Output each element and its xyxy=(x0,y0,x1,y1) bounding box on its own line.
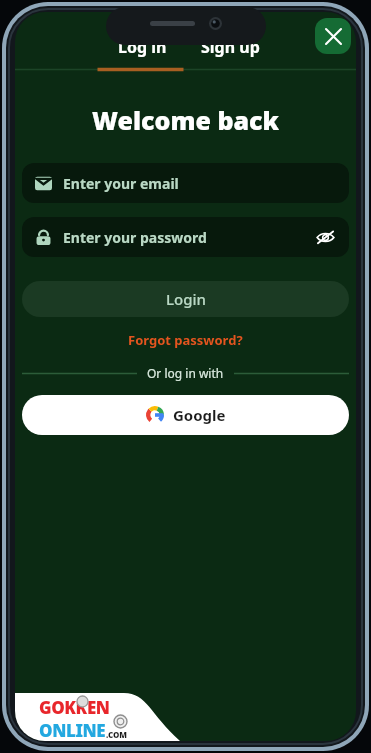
staticText: Log in xyxy=(118,36,167,58)
button[interactable]: Close xyxy=(315,18,351,54)
staticText: Enter your password xyxy=(63,228,207,247)
staticText: Google xyxy=(173,405,226,425)
staticText: Login xyxy=(166,289,206,309)
staticText: Forgot password? xyxy=(128,331,243,349)
staticText: Enter your email xyxy=(63,174,179,193)
button[interactable]: Enter your email xyxy=(22,163,349,203)
staticText: Or log in with xyxy=(147,365,224,381)
staticText: GOKKEN xyxy=(39,696,110,719)
button[interactable]: Enter your password xyxy=(22,217,349,257)
button[interactable]: Show password xyxy=(314,226,336,248)
staticText: ONLINE xyxy=(39,719,106,741)
button[interactable]: Log in xyxy=(98,12,186,68)
staticText: Sign up xyxy=(201,36,260,58)
button[interactable]: Forgot password? xyxy=(15,331,356,349)
button[interactable]: Google xyxy=(22,395,349,435)
staticText: .COM xyxy=(106,729,128,740)
button[interactable]: Sign up xyxy=(186,12,274,68)
staticText: Welcome back xyxy=(15,103,356,137)
button[interactable]: Login xyxy=(22,281,349,317)
